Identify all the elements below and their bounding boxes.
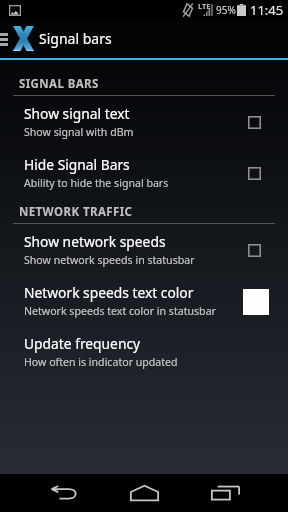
staticText: Show signal text <box>24 104 130 123</box>
button[interactable]: Show signal text <box>0 96 288 147</box>
staticText: NETWORK TRAFFIC <box>19 204 133 220</box>
staticText: Update frequency <box>24 334 141 353</box>
button[interactable]: Pick text color <box>238 285 269 316</box>
button[interactable]: Checkbox <box>239 235 269 265</box>
button[interactable]: Checkbox <box>239 158 269 188</box>
staticText: Show network speeds <box>24 232 166 251</box>
button[interactable]: Back <box>36 474 90 512</box>
staticText: Show network speeds in statusbar <box>24 253 195 267</box>
staticText: 11:45 <box>250 1 284 19</box>
staticText: Hide Signal Bars <box>24 155 130 174</box>
button[interactable]: Hide Signal Bars <box>0 147 288 198</box>
button[interactable]: Home <box>117 474 171 512</box>
staticText: Signal bars <box>39 29 112 48</box>
button[interactable]: Show network speeds <box>0 224 288 275</box>
staticText: Ability to hide the signal bars <box>24 176 169 190</box>
staticText: Show signal with dBm <box>24 125 134 139</box>
button[interactable]: Update frequency <box>0 326 288 377</box>
staticText: How often is indicator updated <box>24 355 178 369</box>
staticText: LTE <box>198 1 211 11</box>
button[interactable]: Network speeds text color <box>0 275 288 326</box>
staticText: 95% <box>216 3 236 17</box>
staticText: Network speeds text color in statusbar <box>24 304 216 318</box>
staticText: SIGNAL BARS <box>19 76 99 92</box>
button[interactable]: Checkbox <box>239 107 269 137</box>
button[interactable]: Navigation drawer <box>0 20 13 58</box>
button[interactable]: Recent apps <box>198 474 252 512</box>
staticText: Network speeds text color <box>24 283 194 302</box>
